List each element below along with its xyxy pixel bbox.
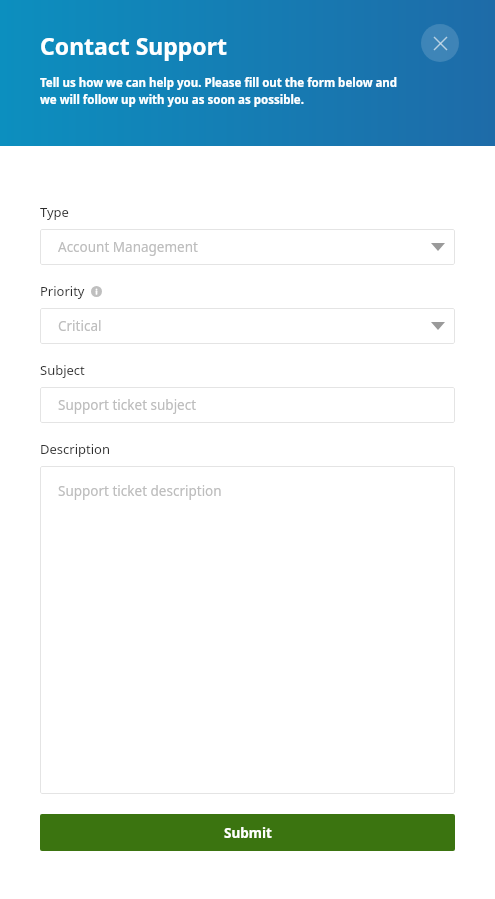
staticText: Support ticket subject (58, 396, 197, 414)
staticText: Critical (58, 317, 102, 335)
staticText: Contact Support (40, 30, 228, 61)
button[interactable]: Close (421, 24, 459, 62)
button[interactable]: Support ticket description (40, 466, 455, 794)
staticText: Priority (40, 282, 85, 300)
staticText: Description (40, 440, 110, 458)
staticText: Subject (40, 361, 85, 379)
button[interactable]: Account Management (40, 229, 455, 265)
button[interactable]: Critical (40, 308, 455, 344)
staticText: Submit (224, 824, 272, 842)
staticText: Account Management (58, 238, 198, 256)
staticText: Support ticket description (58, 482, 222, 500)
staticText: Tell us how we can help you. Please fill… (40, 75, 415, 107)
staticText: Type (40, 203, 69, 221)
button[interactable]: Support ticket subject (40, 387, 455, 423)
button[interactable]: Submit (40, 814, 455, 851)
